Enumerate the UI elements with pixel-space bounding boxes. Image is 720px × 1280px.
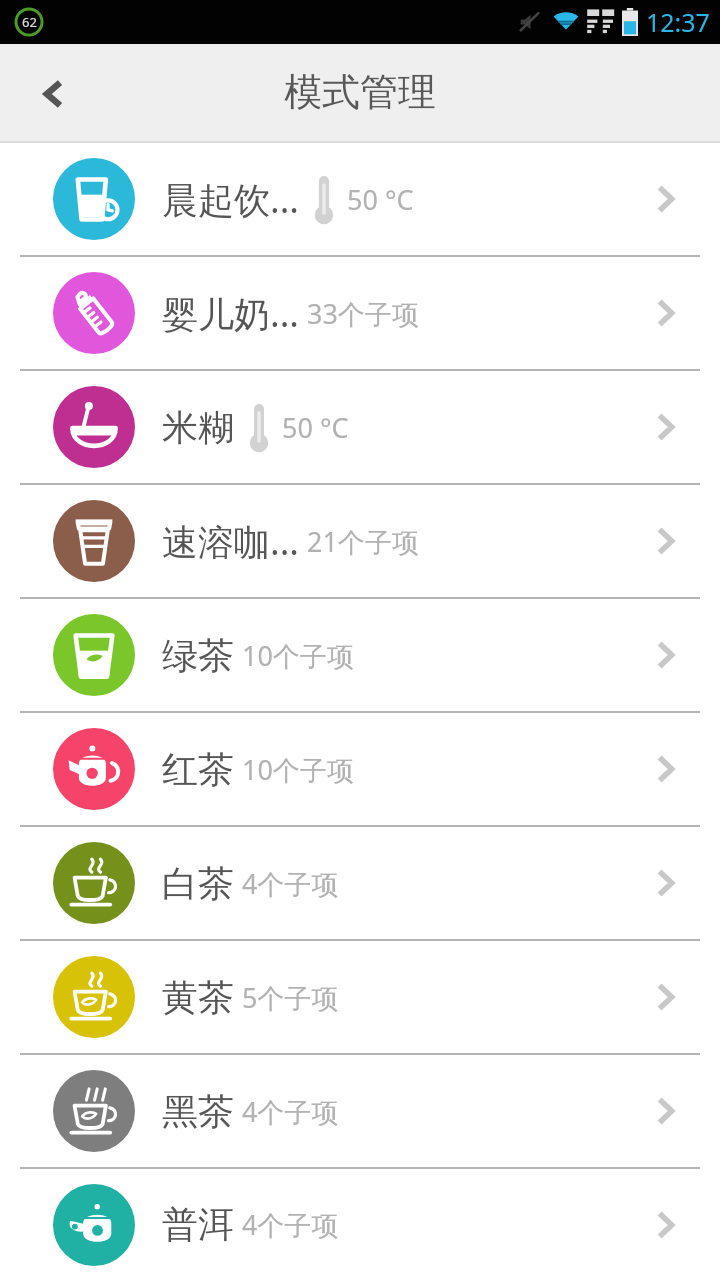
staticText: 普洱 [162, 1202, 234, 1247]
staticText: 晨起饮... [162, 175, 299, 224]
staticText: 黑茶 [162, 1089, 234, 1134]
staticText: 黄茶 [162, 975, 234, 1020]
button[interactable]: 晨起饮... [0, 143, 720, 255]
staticText: 模式管理 [284, 68, 436, 116]
staticText: 10个子项 [242, 751, 354, 788]
button[interactable]: 黑茶 [0, 1055, 720, 1167]
staticText: 21个子项 [307, 523, 419, 560]
staticText: 婴儿奶... [162, 289, 299, 338]
staticText: 4个子项 [242, 1206, 339, 1243]
button[interactable]: Back [20, 60, 88, 128]
staticText: 62 [22, 13, 37, 31]
staticText: 红茶 [162, 747, 234, 792]
button[interactable]: 白茶 [0, 827, 720, 939]
button[interactable]: 黄茶 [0, 941, 720, 1053]
button[interactable]: 绿茶 [0, 599, 720, 711]
button[interactable]: 米糊 [0, 371, 720, 483]
staticText: 4个子项 [242, 1093, 339, 1130]
button[interactable]: 红茶 [0, 713, 720, 825]
button[interactable]: 普洱 [0, 1169, 720, 1280]
staticText: 4个子项 [242, 865, 339, 902]
button[interactable]: 速溶咖... [0, 485, 720, 597]
staticText: 速溶咖... [162, 517, 299, 566]
staticText: 10个子项 [242, 637, 354, 674]
staticText: 绿茶 [162, 633, 234, 678]
staticText: 米糊 [162, 405, 234, 450]
staticText: 白茶 [162, 861, 234, 906]
staticText: 5个子项 [242, 979, 339, 1016]
staticText: 50 °C [282, 409, 349, 446]
staticText: 33个子项 [307, 295, 419, 332]
button[interactable]: 婴儿奶... [0, 257, 720, 369]
staticText: 12:37 [646, 5, 710, 39]
staticText: 50 °C [347, 181, 414, 218]
